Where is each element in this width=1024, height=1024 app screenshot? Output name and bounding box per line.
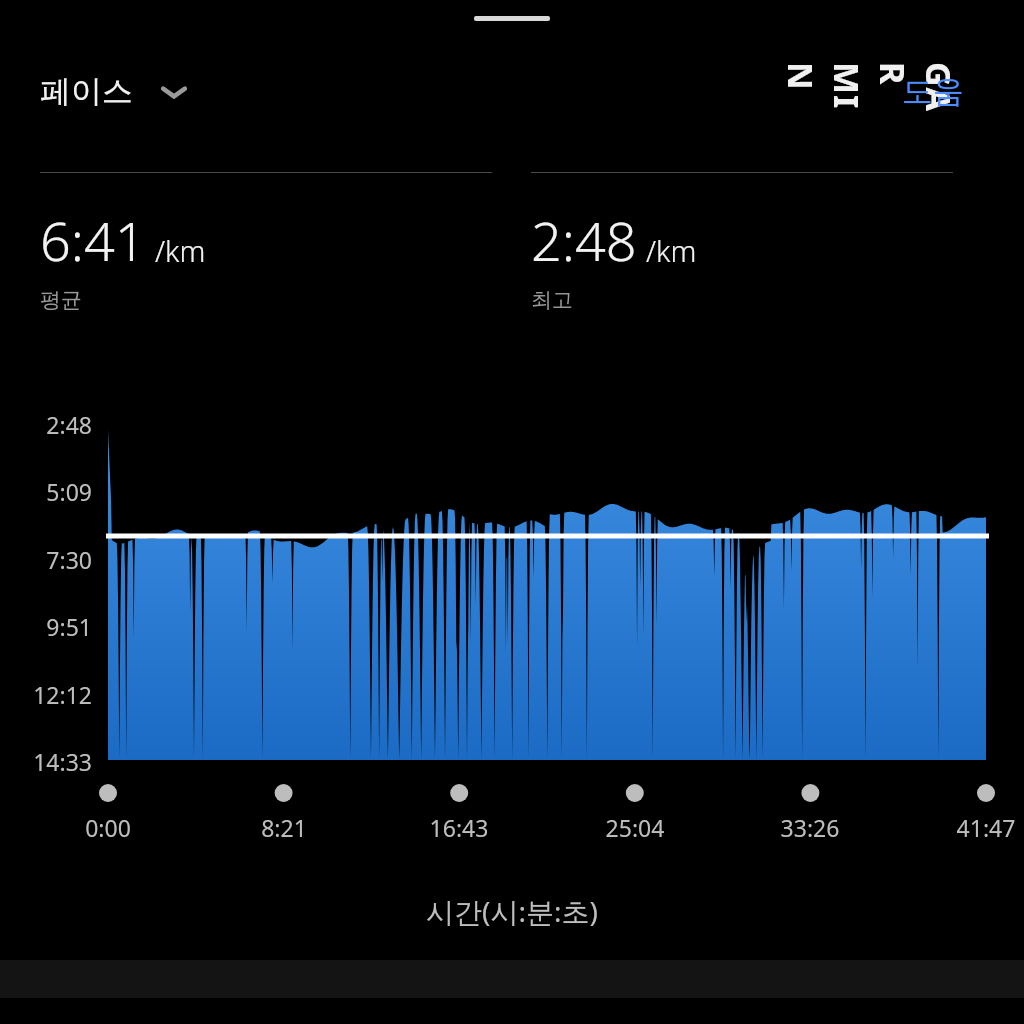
staticText: 최고 bbox=[531, 287, 573, 313]
staticText: 12:12 bbox=[0, 679, 92, 710]
staticText: /km bbox=[646, 231, 697, 270]
staticText: 평균 bbox=[40, 287, 82, 313]
staticText: 2:48 bbox=[531, 203, 637, 277]
staticText: 33:26 bbox=[750, 812, 870, 843]
staticText: 6:41 bbox=[40, 203, 146, 277]
staticText: 14:33 bbox=[0, 746, 92, 777]
button[interactable]: 도움 bbox=[902, 72, 964, 111]
staticText: 25:04 bbox=[575, 812, 695, 843]
button[interactable]: 6:41 bbox=[40, 172, 492, 313]
staticText: 5:09 bbox=[0, 476, 92, 507]
staticText: 8:21 bbox=[224, 812, 344, 843]
staticText: 0:00 bbox=[48, 812, 168, 843]
other: Change metric bbox=[157, 75, 191, 109]
staticText: GARMIN bbox=[778, 62, 962, 118]
staticText: 9:51 bbox=[0, 611, 92, 642]
staticText: 16:43 bbox=[399, 812, 519, 843]
button[interactable]: 페이스 bbox=[40, 72, 191, 111]
staticText: 2:48 bbox=[0, 409, 92, 440]
staticText: 시간(시:분:초) bbox=[0, 892, 1024, 930]
staticText: 도움 bbox=[902, 72, 964, 111]
staticText: 페이스 bbox=[40, 72, 133, 111]
staticText: /km bbox=[155, 231, 206, 270]
staticText: 41:47 bbox=[926, 812, 1024, 843]
button[interactable]: 2:48 bbox=[531, 172, 953, 313]
staticText: 7:30 bbox=[0, 544, 92, 575]
